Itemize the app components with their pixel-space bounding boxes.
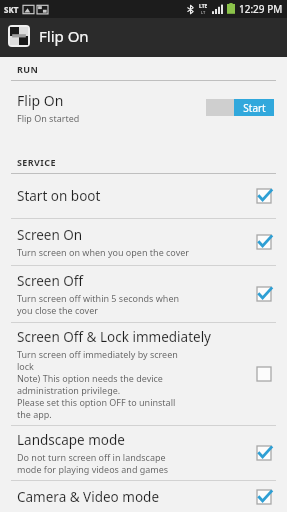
staticText: Turn screen on when you open the cover	[17, 246, 189, 258]
staticText: Flip On	[39, 26, 89, 46]
staticText: Start	[243, 101, 266, 115]
button[interactable]: Screen On	[0, 219, 287, 265]
staticText: Note) This option needs the device	[17, 372, 163, 384]
staticText: administration privilege.	[17, 384, 121, 396]
staticText: the app.	[17, 408, 52, 420]
button[interactable]: Checked	[253, 231, 275, 253]
staticText: Turn screen off within 5 seconds when	[17, 292, 180, 304]
staticText: LT	[201, 10, 206, 15]
staticText: Landscape mode	[17, 431, 125, 449]
staticText: 12:29 PM	[239, 2, 283, 16]
button[interactable]: Unchecked	[253, 363, 275, 385]
button[interactable]: Checked	[253, 442, 275, 464]
staticText: Flip On started	[17, 112, 80, 124]
staticText: Start on boot	[17, 187, 101, 205]
staticText: SKT	[4, 4, 19, 15]
staticText: SERVICE	[17, 156, 56, 168]
button[interactable]: Screen Off & Lock immediately	[0, 323, 287, 425]
staticText: you close the cover	[17, 304, 98, 316]
staticText: Turn screen off immediately by screen	[17, 348, 178, 360]
button[interactable]: App icon	[8, 25, 30, 47]
button[interactable]: Camera & Video mode	[0, 481, 287, 512]
button[interactable]: Screen Off	[0, 266, 287, 322]
button[interactable]: Flip On	[0, 81, 287, 133]
staticText: Please set this option OFF to uninstall	[17, 396, 176, 408]
button[interactable]: Checked	[253, 283, 275, 305]
button[interactable]: Start on boot	[0, 174, 287, 218]
staticText: Screen Off & Lock immediately	[17, 328, 212, 346]
button[interactable]: Landscape mode	[0, 426, 287, 480]
staticText: lock	[17, 360, 34, 372]
staticText: Flip On	[17, 91, 64, 110]
staticText: Camera & Video mode	[17, 488, 160, 506]
staticText: LTE	[199, 3, 208, 10]
button[interactable]: Checked	[253, 185, 275, 207]
staticText: Screen Off	[17, 272, 84, 290]
button[interactable]: Checked	[253, 486, 275, 508]
staticText: Screen On	[17, 226, 83, 244]
staticText: mode for playing videos and games	[17, 463, 169, 475]
staticText: RUN	[17, 63, 39, 75]
staticText: Do not turn screen off in landscape	[17, 451, 166, 463]
button[interactable]: Start toggle	[206, 99, 274, 116]
